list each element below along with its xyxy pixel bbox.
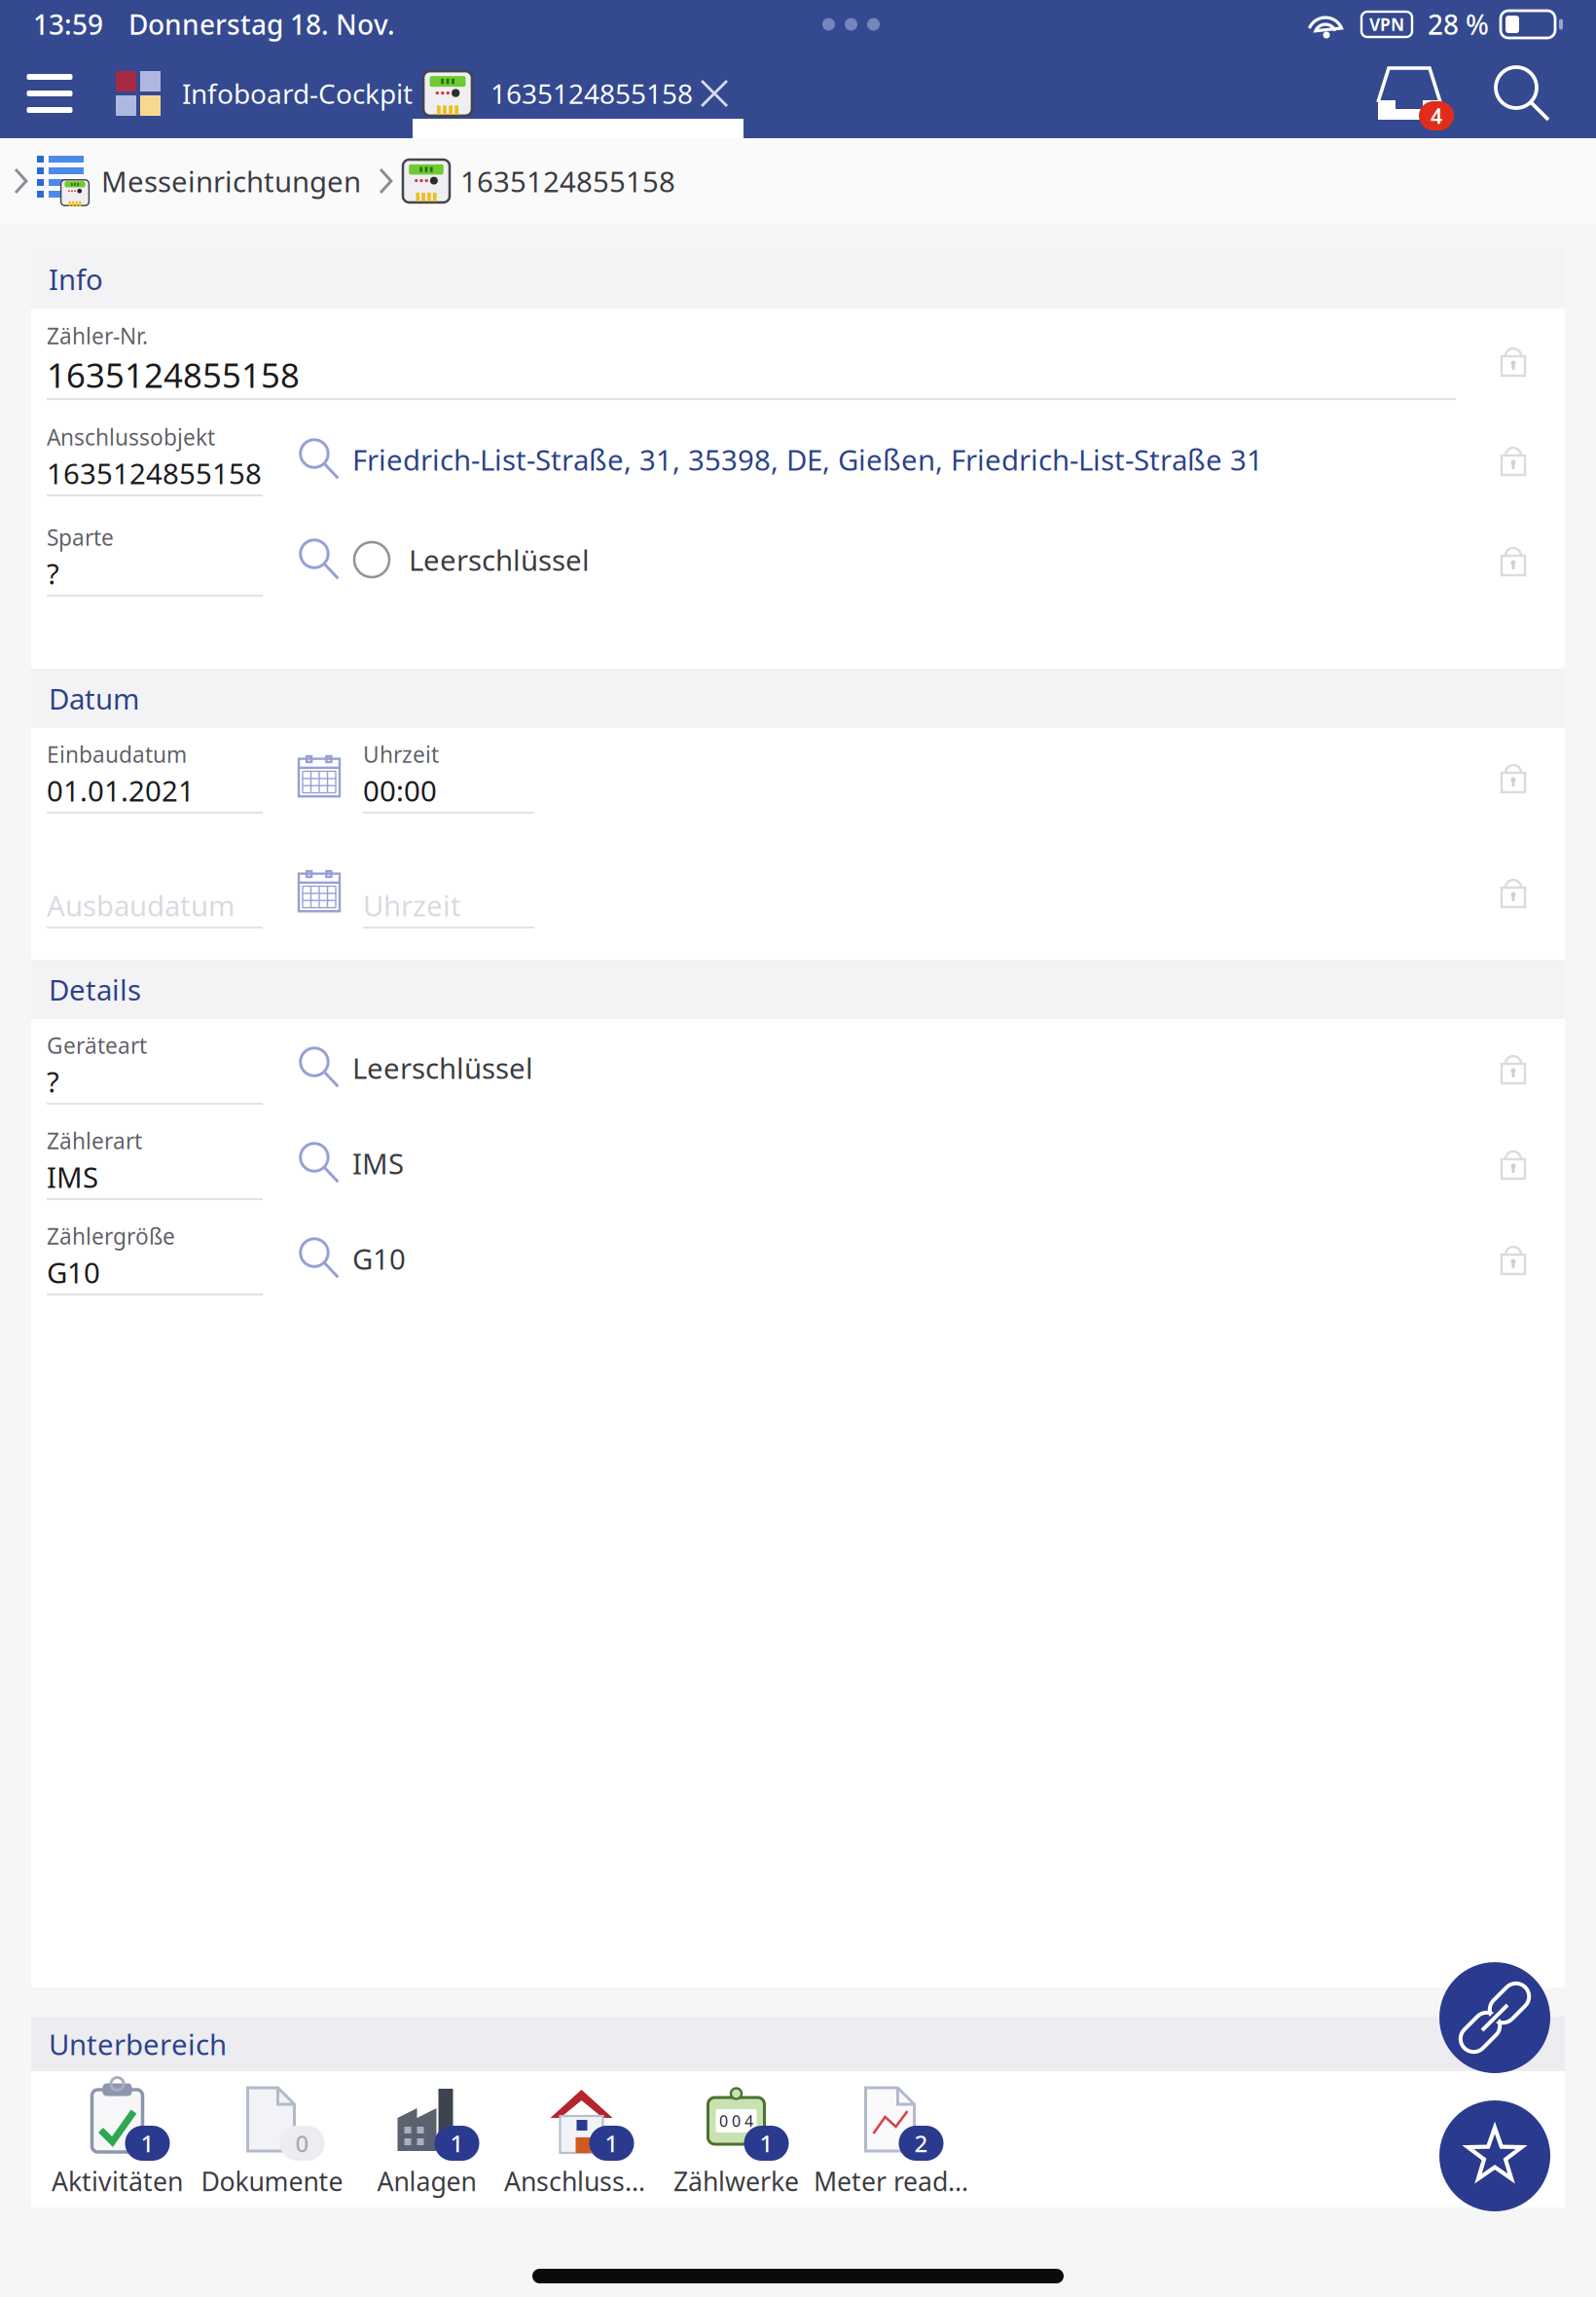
staticText: Friedrich-List-Straße, 31, 35398, DE, Gi… (352, 440, 1263, 478)
staticText: G10 (352, 1240, 406, 1277)
staticText: Geräteart (47, 1031, 147, 1060)
staticText: Zählerart (47, 1126, 142, 1155)
staticText: 13:59 (33, 6, 103, 42)
staticText: Zählergröße (47, 1221, 175, 1251)
staticText: Datum (49, 679, 139, 717)
staticText: Leerschlüssel (409, 541, 590, 579)
staticText: Dokumente (201, 2164, 343, 2198)
button[interactable]: 1 (504, 2079, 659, 2200)
button[interactable]: 1 (40, 2079, 195, 2200)
staticText: 01.01.2021 (47, 771, 195, 809)
button[interactable]: Inbox (1349, 49, 1469, 138)
staticText: Anschlussobjekt (47, 422, 215, 452)
button[interactable]: Menu (0, 49, 99, 138)
staticText: Meter readin... (814, 2164, 968, 2198)
staticText: Sparte (47, 523, 114, 552)
staticText: 4 (1431, 102, 1442, 130)
staticText: 00:00 (363, 771, 437, 809)
staticText: ? (47, 554, 59, 592)
staticText: 1 (605, 2128, 618, 2159)
staticText: Uhrzeit (363, 886, 461, 924)
staticText: 1 (141, 2128, 154, 2159)
button[interactable]: 1635124855158 (413, 49, 744, 138)
button[interactable]: Search (1469, 49, 1575, 138)
button[interactable]: Link (1439, 1962, 1550, 2073)
staticText: Anschlussob... (504, 2164, 659, 2198)
staticText: VPN (1369, 13, 1404, 36)
staticText: Leerschlüssel (352, 1049, 533, 1087)
staticText: Zähler-Nr. (47, 321, 148, 350)
staticText: 0 0 4 (719, 2111, 753, 2131)
staticText: Zählwerke (673, 2164, 799, 2198)
button[interactable]: 0 0 4 (659, 2079, 814, 2200)
button[interactable]: Favorite (1439, 2100, 1550, 2211)
staticText: Messeinrichtungen (101, 162, 361, 200)
staticText: Einbaudatum (47, 740, 187, 769)
staticText: 2 (914, 2128, 928, 2159)
staticText: Ausbaudatum (47, 886, 235, 924)
staticText: IMS (352, 1144, 404, 1182)
staticText: 0 (295, 2128, 309, 2159)
button[interactable]: 1635124855158 (402, 157, 675, 205)
staticText: 28 % (1428, 6, 1489, 42)
staticText: Uhrzeit (363, 740, 439, 769)
staticText: Details (49, 970, 141, 1008)
button[interactable]: Infoboard-Cockpit (99, 49, 413, 138)
staticText: Infoboard-Cockpit (182, 75, 413, 112)
staticText: Donnerstag 18. Nov. (128, 6, 395, 42)
staticText: IMS (47, 1158, 98, 1196)
staticText: 1635124855158 (460, 162, 675, 200)
staticText: Aktivitäten (52, 2164, 183, 2198)
staticText: G10 (47, 1253, 100, 1291)
staticText: 1635124855158 (490, 75, 693, 112)
staticText: 1635124855158 (47, 454, 262, 492)
staticText: Info (49, 260, 103, 298)
staticText: 1635124855158 (47, 352, 300, 397)
staticText: Unterbereich (49, 2025, 227, 2063)
staticText: 1 (450, 2128, 464, 2159)
button[interactable]: 2 (814, 2079, 968, 2200)
button[interactable]: Messeinrichtungen (35, 155, 361, 207)
staticText: Anlagen (377, 2164, 476, 2198)
button[interactable]: 0 (195, 2079, 349, 2200)
button[interactable]: 1 (349, 2079, 504, 2200)
staticText: 1 (760, 2128, 773, 2159)
staticText: ? (47, 1062, 59, 1100)
